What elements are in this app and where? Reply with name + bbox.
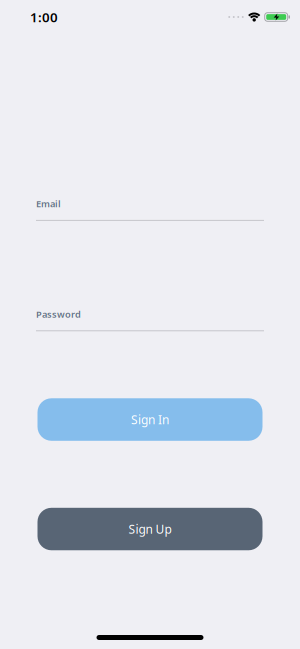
staticText: Email xyxy=(36,197,61,210)
button[interactable]: Sign Up xyxy=(37,508,262,550)
button[interactable]: Email xyxy=(36,197,264,221)
staticText: Password xyxy=(36,308,81,320)
button[interactable]: Password xyxy=(36,308,264,331)
button[interactable]: Sign In xyxy=(37,398,262,441)
staticText: Sign In xyxy=(131,412,169,427)
staticText: 1:00 xyxy=(30,8,58,26)
staticText: Sign Up xyxy=(128,521,171,537)
